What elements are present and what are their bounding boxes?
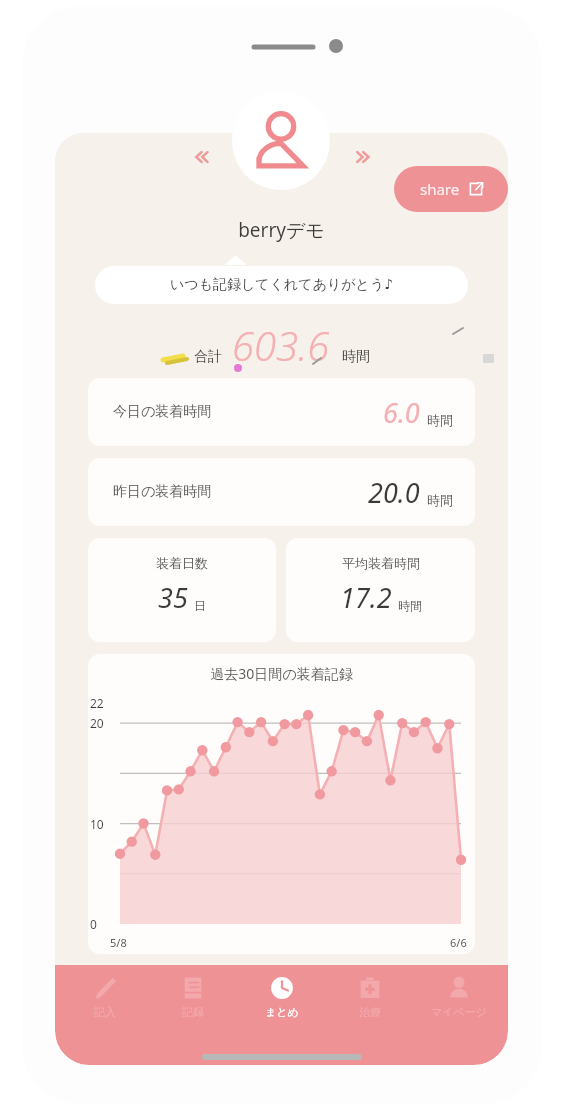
staticText: 平均装着時間 <box>342 555 420 571</box>
staticText: 時間 <box>342 348 370 366</box>
staticText: 装着日数 <box>156 555 208 571</box>
staticText: 記入 <box>94 1005 116 1019</box>
staticText: 6/6 <box>450 935 467 950</box>
staticText: 今日の装着時間 <box>113 403 212 421</box>
button[interactable]: share <box>394 166 508 212</box>
button[interactable]: Previous <box>185 140 219 174</box>
staticText: まとめ <box>265 1005 299 1019</box>
button[interactable]: Next <box>346 140 380 174</box>
button[interactable]: Profile avatar <box>232 92 330 190</box>
staticText: 22 <box>90 695 104 711</box>
button[interactable]: 今日の装着時間 <box>88 378 475 446</box>
button[interactable]: 過去30日間の装着記録 <box>88 654 475 954</box>
staticText: 10 <box>90 816 104 832</box>
button[interactable]: マイページ <box>420 975 498 1019</box>
staticText: 35 <box>158 579 188 616</box>
staticText: 0 <box>90 916 97 932</box>
staticText: 合計 <box>194 348 222 366</box>
staticText: 時間 <box>427 412 453 428</box>
staticText: share <box>420 179 460 199</box>
staticText: 20 <box>90 715 104 731</box>
staticText: 昨日の装着時間 <box>113 483 212 501</box>
button[interactable]: 記入 <box>66 975 144 1019</box>
staticText: 治療 <box>359 1005 381 1019</box>
button[interactable]: 昨日の装着時間 <box>88 458 475 526</box>
staticText: いつも記録してくれてありがとう♪ <box>170 276 394 294</box>
staticText: 17.2 <box>340 579 392 616</box>
staticText: 603.6 <box>232 318 330 372</box>
button[interactable]: 平均装着時間 <box>286 538 475 642</box>
staticText: 時間 <box>398 598 422 613</box>
button[interactable]: まとめ <box>243 975 321 1019</box>
staticText: berryデモ <box>55 217 508 243</box>
staticText: 5/8 <box>110 935 127 950</box>
button[interactable]: 装着日数 <box>88 538 276 642</box>
staticText: 日 <box>194 598 206 613</box>
staticText: 20.0 <box>368 474 420 511</box>
staticText: 時間 <box>427 492 453 508</box>
staticText: 記録 <box>182 1005 204 1019</box>
button[interactable]: 記録 <box>154 975 232 1019</box>
staticText: 過去30日間の装着記録 <box>88 664 475 683</box>
button[interactable]: 治療 <box>331 975 409 1019</box>
staticText: 6.0 <box>383 394 420 431</box>
staticText: マイページ <box>431 1005 488 1019</box>
